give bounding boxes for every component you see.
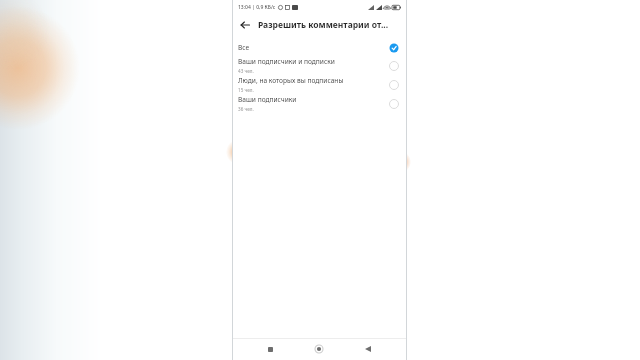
staticText: Все xyxy=(238,43,250,52)
button[interactable]: Главный экран xyxy=(311,341,327,357)
button[interactable]: Назад xyxy=(236,16,254,34)
staticText: 36 чел. xyxy=(238,106,254,112)
button[interactable]: Люди, на которых вы подписаны xyxy=(233,75,406,94)
button[interactable]: Назад xyxy=(360,341,376,357)
staticText: Ваши подписчики xyxy=(238,95,297,104)
button[interactable]: Ваши подписчики и подписки xyxy=(233,56,406,75)
button[interactable]: Все xyxy=(233,39,406,56)
button[interactable]: Обзор xyxy=(262,341,278,357)
staticText: Разрешить комментарии от... xyxy=(258,19,389,31)
button[interactable]: Ваши подписчики xyxy=(233,94,406,113)
staticText: 13:04 | 0,9 КБ/с xyxy=(238,4,276,11)
staticText: Ваши подписчики и подписки xyxy=(238,57,335,66)
staticText: Люди, на которых вы подписаны xyxy=(238,76,344,85)
staticText: 15 чел. xyxy=(238,87,254,93)
staticText: 43 чел. xyxy=(238,68,254,74)
